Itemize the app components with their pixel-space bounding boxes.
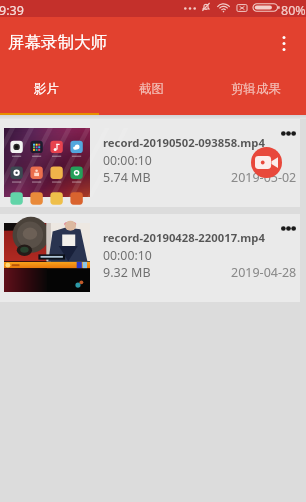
button[interactable]: Item menu — [276, 125, 300, 142]
button[interactable]: record-20190502-093858.mp4 — [0, 119, 300, 207]
staticText: 剪辑成果 — [231, 81, 281, 97]
button[interactable]: 影片 — [0, 68, 98, 115]
staticText: 00:00:10 — [103, 247, 152, 264]
staticText: 屏幕录制大师 — [8, 32, 107, 53]
staticText: 00:00:10 — [103, 152, 152, 169]
staticText: 截图 — [139, 81, 164, 97]
staticText: record-20190502-093858.mp4 — [103, 135, 265, 150]
button[interactable]: Item menu — [276, 220, 300, 237]
staticText: 9:39 — [0, 2, 24, 19]
staticText: 2019-04-28 — [231, 264, 297, 281]
button[interactable]: Record video — [251, 147, 282, 178]
staticText: 9.32 MB — [103, 264, 151, 281]
staticText: 5.74 MB — [103, 169, 151, 186]
staticText: record-20190428-220017.mp4 — [103, 230, 265, 245]
staticText: 影片 — [34, 81, 59, 97]
button[interactable]: 剪辑成果 — [204, 68, 306, 115]
button[interactable]: More options — [262, 21, 306, 65]
staticText: 80% — [281, 2, 306, 19]
button[interactable]: record-20190428-220017.mp4 — [0, 214, 300, 302]
staticText: 2019-05-02 — [231, 169, 297, 186]
button[interactable]: 截图 — [99, 68, 203, 115]
